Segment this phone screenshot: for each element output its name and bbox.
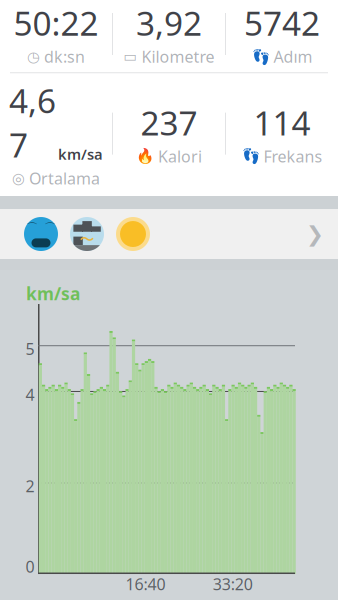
- staticText: dk:sn: [44, 46, 85, 67]
- staticText: 114: [253, 100, 310, 145]
- staticText: km/sa: [26, 282, 80, 305]
- staticText: ▄▆▃▅: [73, 218, 100, 245]
- staticText: 4: [25, 384, 34, 405]
- staticText: 4,67: [9, 78, 56, 167]
- staticText: 〜: [79, 230, 94, 248]
- staticText: ▭: [123, 48, 137, 65]
- staticText: Kilometre: [141, 46, 214, 67]
- staticText: km/sa: [58, 144, 103, 164]
- staticText: 👣: [251, 48, 269, 65]
- staticText: Adım: [273, 46, 312, 67]
- staticText: 🔥: [136, 148, 154, 165]
- staticText: 0: [25, 556, 34, 577]
- button[interactable]: ⌒: [0, 209, 338, 259]
- staticText: ◷: [27, 48, 40, 65]
- staticText: 16:40: [125, 573, 165, 595]
- staticText: 3,92: [136, 1, 202, 45]
- staticText: ◎: [12, 170, 25, 187]
- staticText: 237: [140, 100, 197, 145]
- staticText: 33:20: [213, 573, 253, 595]
- staticText: ⌒: [44, 221, 56, 235]
- staticText: Kalori: [158, 146, 202, 167]
- staticText: ⌒: [26, 221, 38, 235]
- staticText: ❯: [306, 222, 324, 246]
- staticText: Ortalama: [29, 168, 100, 189]
- staticText: Frekans: [263, 146, 322, 167]
- staticText: 50:22: [13, 1, 98, 45]
- staticText: 5742: [244, 1, 320, 45]
- staticText: 5: [25, 338, 34, 359]
- staticText: 👣: [241, 148, 259, 165]
- staticText: 2: [25, 475, 34, 497]
